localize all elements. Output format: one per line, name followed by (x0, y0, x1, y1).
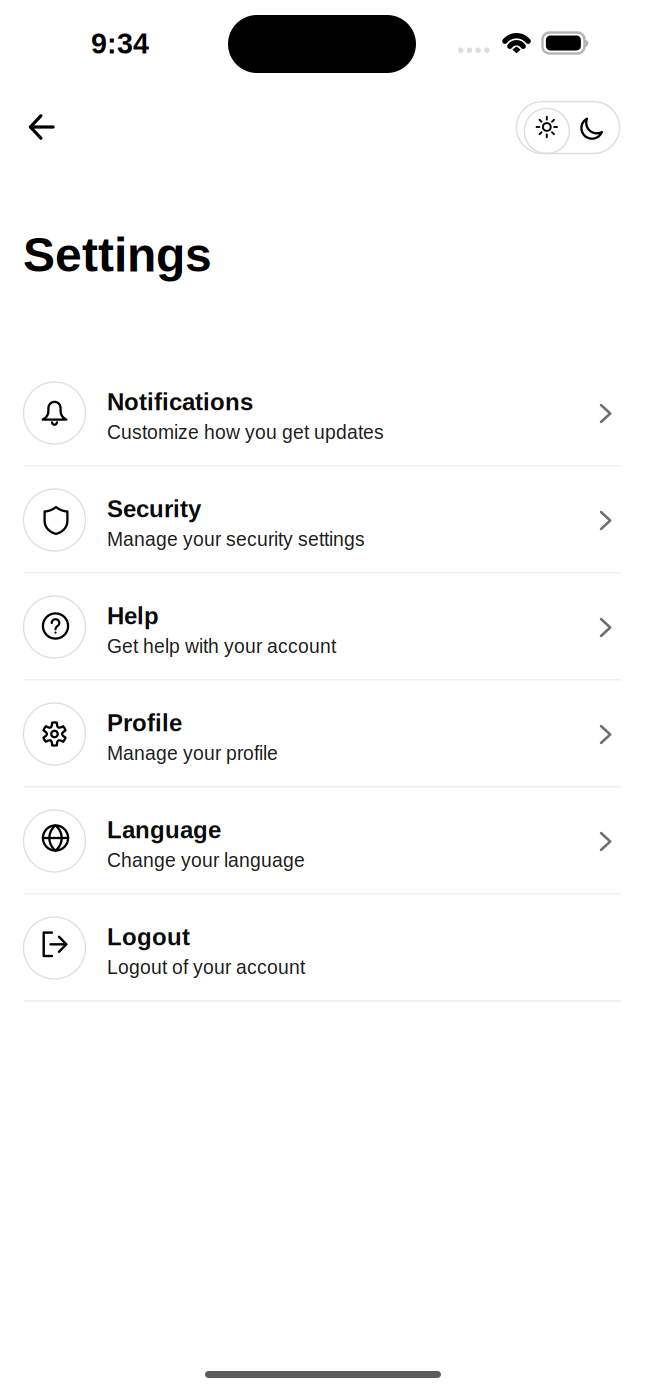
staticText: Language (107, 816, 221, 843)
button[interactable]: Security (0, 466, 645, 572)
staticText: Security (107, 495, 201, 522)
staticText: Notifications (107, 388, 253, 415)
staticText: Logout (107, 923, 190, 950)
button[interactable]: Notifications (0, 359, 645, 465)
staticText: Customize how you get updates (107, 421, 384, 443)
staticText: Change your language (107, 849, 305, 871)
staticText: Manage your security settings (107, 528, 365, 550)
button[interactable]: Logout (0, 894, 645, 1000)
staticText: Manage your profile (107, 742, 278, 764)
button[interactable]: Back (13, 98, 71, 156)
button[interactable]: Language (0, 787, 645, 893)
button[interactable]: Profile (0, 680, 645, 786)
staticText: Help (107, 602, 159, 629)
staticText: Profile (107, 709, 182, 736)
staticText: Settings (23, 228, 212, 282)
button[interactable]: Light appearance (521, 105, 573, 157)
button[interactable]: Dark appearance (567, 101, 616, 153)
button[interactable]: Help (0, 573, 645, 679)
staticText: Logout of your account (107, 956, 305, 978)
staticText: Get help with your account (107, 635, 336, 657)
staticText: 9:34 (91, 27, 149, 59)
